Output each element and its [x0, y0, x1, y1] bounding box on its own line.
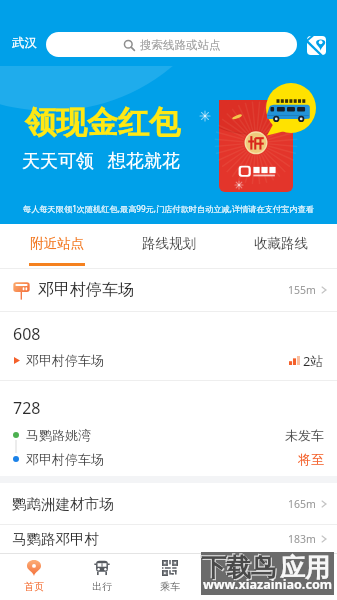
- button[interactable]: 领现金红包: [0, 66, 337, 224]
- staticText: 未发车: [285, 427, 324, 443]
- staticText: 马鹦路姚湾: [26, 427, 91, 443]
- staticText: 发现: [227, 580, 247, 593]
- button[interactable]: 首页: [0, 553, 68, 600]
- button[interactable]: 鹦鹉洲建材市场: [0, 483, 337, 524]
- button[interactable]: 我的: [270, 553, 337, 600]
- staticText: 邓甲村停车场: [38, 280, 134, 300]
- staticText: 将至: [298, 451, 324, 467]
- staticText: 183m: [288, 532, 316, 546]
- staticText: 下载鸟: [200, 551, 275, 582]
- staticText: 出行: [92, 580, 112, 593]
- button[interactable]: 邓甲村停车场: [0, 269, 337, 311]
- staticText: 天天可领 想花就花: [22, 148, 181, 173]
- staticText: 2站: [303, 352, 324, 368]
- staticText: 武汉: [12, 35, 37, 51]
- staticText: 马鹦路邓甲村: [12, 530, 99, 548]
- staticText: 邓甲村停车场: [26, 352, 104, 368]
- staticText: 608: [13, 323, 41, 345]
- button[interactable]: 收藏路线: [225, 224, 337, 269]
- button[interactable]: 608: [0, 312, 337, 380]
- staticText: 每人每天限领1次随机红包,最高99元,门店付款时自动立减,详情请在支付宝内查看: [23, 203, 314, 214]
- button[interactable]: 武汉: [10, 33, 39, 53]
- staticText: 搜索线路或站点: [140, 38, 221, 52]
- button[interactable]: 马鹦路邓甲村: [0, 525, 337, 553]
- staticText: 首页: [24, 580, 44, 593]
- button[interactable]: 出行: [68, 553, 136, 600]
- button[interactable]: 附近站点: [0, 224, 113, 269]
- staticText: 应用: [280, 552, 330, 583]
- staticText: 收藏路线: [254, 235, 308, 252]
- button[interactable]: 搜索线路或站点: [46, 32, 297, 57]
- staticText: www.xiazainiao.com: [203, 576, 333, 593]
- staticText: 165m: [288, 497, 316, 511]
- staticText: 路线规划: [142, 235, 196, 252]
- staticText: 乘车: [160, 580, 180, 593]
- staticText: 鹦鹉洲建材市场: [12, 495, 114, 513]
- button[interactable]: 乘车: [136, 553, 203, 600]
- staticText: 下载鸟: [201, 552, 276, 583]
- staticText: 我的: [294, 580, 314, 593]
- button[interactable]: 路线规划: [113, 224, 225, 269]
- button[interactable]: Map: [305, 34, 327, 56]
- button[interactable]: 728: [0, 381, 337, 476]
- staticText: 邓甲村停车场: [26, 451, 104, 467]
- staticText: 728: [13, 397, 41, 419]
- staticText: 下载鸟: [202, 553, 277, 584]
- button[interactable]: 发现: [203, 553, 270, 600]
- staticText: 领现金红包: [25, 103, 180, 142]
- staticText: 155m: [288, 283, 316, 297]
- staticText: 附近站点: [30, 235, 84, 252]
